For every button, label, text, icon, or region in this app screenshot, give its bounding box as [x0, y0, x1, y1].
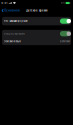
button[interactable]: Всегда разрешать	[2, 30, 71, 37]
staticText: Детское время	[26, 9, 47, 12]
staticText: Основной язык	[4, 40, 21, 43]
button[interactable]: Основное	[0, 6, 21, 15]
button[interactable]: Основной язык	[2, 37, 71, 45]
staticText: Основное	[4, 9, 20, 12]
staticText: Это нижний формат	[4, 20, 28, 23]
staticText: 9:41	[1, 1, 7, 5]
staticText: 87%	[61, 2, 65, 4]
staticText: Всегда разрешать	[4, 32, 25, 35]
button[interactable]: Это нижний формат	[2, 17, 71, 25]
staticText: Включено	[60, 40, 70, 43]
